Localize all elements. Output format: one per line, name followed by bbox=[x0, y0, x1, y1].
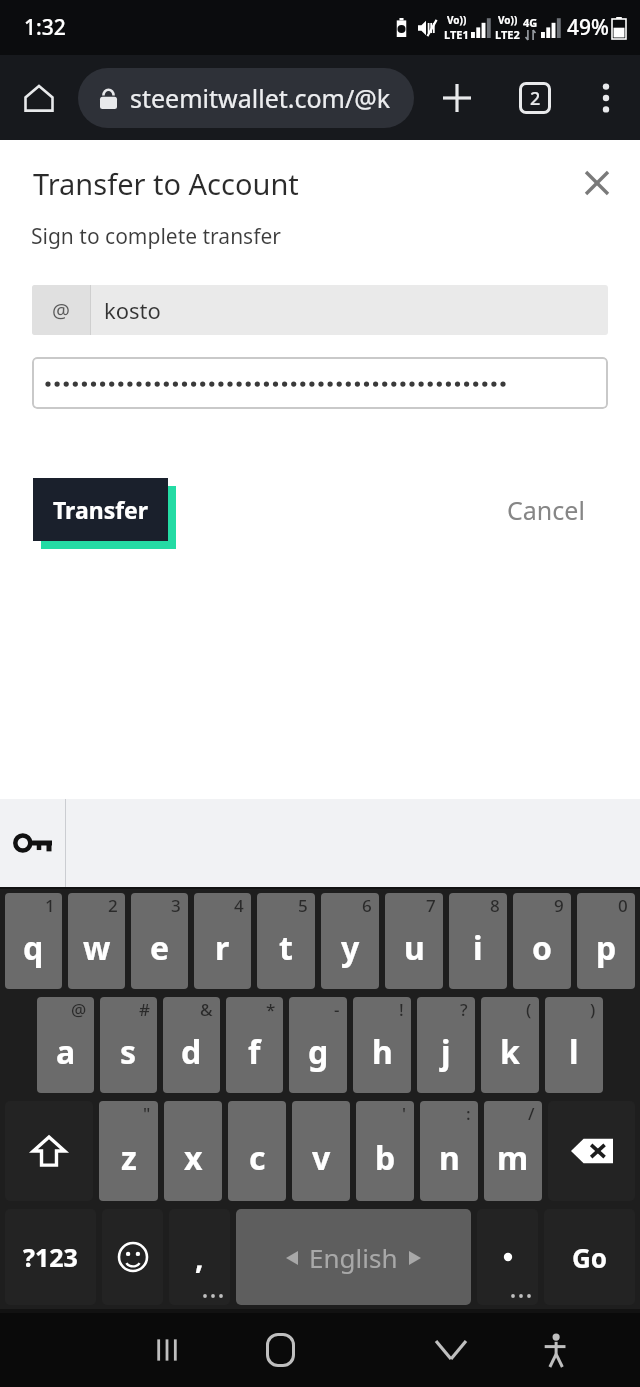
staticText: Transfer bbox=[53, 494, 149, 525]
staticText: m bbox=[497, 1136, 529, 1180]
button[interactable]: Recents bbox=[116, 1313, 217, 1387]
staticText: 7 bbox=[426, 894, 436, 917]
button[interactable]: ' bbox=[356, 1101, 414, 1201]
staticText: n bbox=[439, 1136, 460, 1180]
button[interactable]: Transfer bbox=[33, 478, 168, 541]
staticText: u bbox=[404, 926, 425, 970]
staticText: 5 bbox=[298, 894, 308, 917]
staticText: Transfer to Account bbox=[33, 164, 299, 203]
staticText: z bbox=[121, 1136, 137, 1180]
staticText: English bbox=[309, 1240, 398, 1275]
button[interactable]: New tab bbox=[414, 55, 499, 140]
button[interactable]: Go bbox=[544, 1209, 635, 1305]
staticText: * bbox=[266, 998, 276, 1021]
button[interactable]: Backspace bbox=[548, 1101, 635, 1201]
staticText: LTE2 bbox=[495, 27, 520, 42]
button[interactable]: Home bbox=[0, 55, 78, 140]
button[interactable]: 2 bbox=[68, 893, 125, 989]
button[interactable]: ! bbox=[353, 997, 411, 1093]
button[interactable]: Cancel bbox=[507, 478, 585, 541]
staticText: Go bbox=[572, 1240, 608, 1275]
button[interactable]: , bbox=[169, 1209, 230, 1305]
staticText: ? bbox=[460, 998, 468, 1021]
button[interactable]: Emoji bbox=[102, 1209, 163, 1305]
staticText: @ bbox=[71, 998, 87, 1021]
staticText: y bbox=[341, 926, 360, 970]
staticText: steemitwallet.com/@k bbox=[130, 81, 391, 115]
staticText: 1 bbox=[45, 894, 55, 917]
button[interactable]: Tabs: 2 bbox=[499, 55, 571, 140]
staticText: ( bbox=[526, 998, 532, 1021]
staticText: / bbox=[528, 1102, 535, 1125]
staticText: ' bbox=[402, 1102, 407, 1125]
button[interactable] bbox=[477, 1209, 538, 1305]
staticText: Vo)) bbox=[447, 13, 467, 27]
staticText: x bbox=[184, 1136, 203, 1180]
button[interactable]: Hide keyboard bbox=[400, 1313, 502, 1387]
staticText: LTE1 bbox=[444, 27, 469, 42]
button[interactable]: Accessibility bbox=[502, 1313, 604, 1387]
staticText: t bbox=[279, 926, 293, 970]
button[interactable]: @ bbox=[32, 285, 608, 335]
button[interactable]: 8 bbox=[449, 893, 507, 989]
staticText: Sign to complete transfer bbox=[31, 222, 281, 251]
button[interactable]: c bbox=[228, 1101, 286, 1201]
staticText: b bbox=[375, 1136, 396, 1180]
staticText: p bbox=[596, 926, 617, 970]
staticText: ?123 bbox=[23, 1240, 78, 1274]
button[interactable]: & bbox=[163, 997, 220, 1093]
staticText: l bbox=[569, 1030, 579, 1074]
staticText: - bbox=[334, 998, 340, 1021]
button[interactable]: Shift bbox=[5, 1101, 93, 1201]
staticText: j bbox=[441, 1030, 451, 1074]
button[interactable]: - bbox=[289, 997, 347, 1093]
staticText: 2 bbox=[108, 894, 118, 917]
button[interactable]: Home bbox=[217, 1313, 344, 1387]
button[interactable]: English bbox=[236, 1209, 471, 1305]
button[interactable]: * bbox=[226, 997, 283, 1093]
button[interactable]: # bbox=[100, 997, 157, 1093]
button[interactable]: Password suggestions bbox=[0, 799, 65, 887]
staticText: 9 bbox=[554, 894, 564, 917]
button[interactable]: 9 bbox=[513, 893, 571, 989]
button[interactable]: ? bbox=[417, 997, 475, 1093]
staticText: 8 bbox=[490, 894, 500, 917]
staticText: ) bbox=[590, 998, 596, 1021]
staticText: @ bbox=[52, 297, 70, 324]
button[interactable]: ) bbox=[545, 997, 603, 1093]
staticText: & bbox=[200, 998, 213, 1021]
button[interactable]: 0 bbox=[577, 893, 635, 989]
button[interactable]: 1 bbox=[5, 893, 62, 989]
button[interactable]: More options bbox=[571, 55, 640, 140]
staticText: Vo)) bbox=[498, 13, 518, 27]
staticText: v bbox=[312, 1136, 331, 1180]
button[interactable]: x bbox=[164, 1101, 222, 1201]
button[interactable]: ( bbox=[481, 997, 539, 1093]
staticText: c bbox=[249, 1136, 266, 1180]
button[interactable] bbox=[32, 357, 608, 409]
staticText: kosto bbox=[104, 295, 161, 325]
staticText: r bbox=[215, 926, 230, 970]
button[interactable]: v bbox=[292, 1101, 350, 1201]
button[interactable]: 3 bbox=[131, 893, 188, 989]
staticText: 4 bbox=[234, 894, 244, 917]
staticText: 6 bbox=[362, 894, 372, 917]
button[interactable]: 4 bbox=[194, 893, 251, 989]
staticText: s bbox=[120, 1030, 137, 1074]
staticText: d bbox=[181, 1030, 202, 1074]
button[interactable]: @ bbox=[37, 997, 94, 1093]
button[interactable]: : bbox=[420, 1101, 478, 1201]
staticText: q bbox=[23, 926, 44, 970]
staticText: : bbox=[466, 1102, 471, 1125]
button[interactable]: Symbols bbox=[5, 1209, 96, 1305]
button[interactable]: 7 bbox=[385, 893, 443, 989]
staticText: h bbox=[372, 1030, 393, 1074]
button[interactable]: / bbox=[484, 1101, 542, 1201]
staticText: 0 bbox=[618, 894, 628, 917]
button[interactable]: 6 bbox=[321, 893, 379, 989]
button[interactable]: 5 bbox=[257, 893, 315, 989]
button[interactable]: Close bbox=[568, 154, 626, 212]
button[interactable]: " bbox=[99, 1101, 158, 1201]
button[interactable]: steemitwallet.com/@k bbox=[78, 68, 414, 128]
staticText: # bbox=[139, 998, 150, 1021]
